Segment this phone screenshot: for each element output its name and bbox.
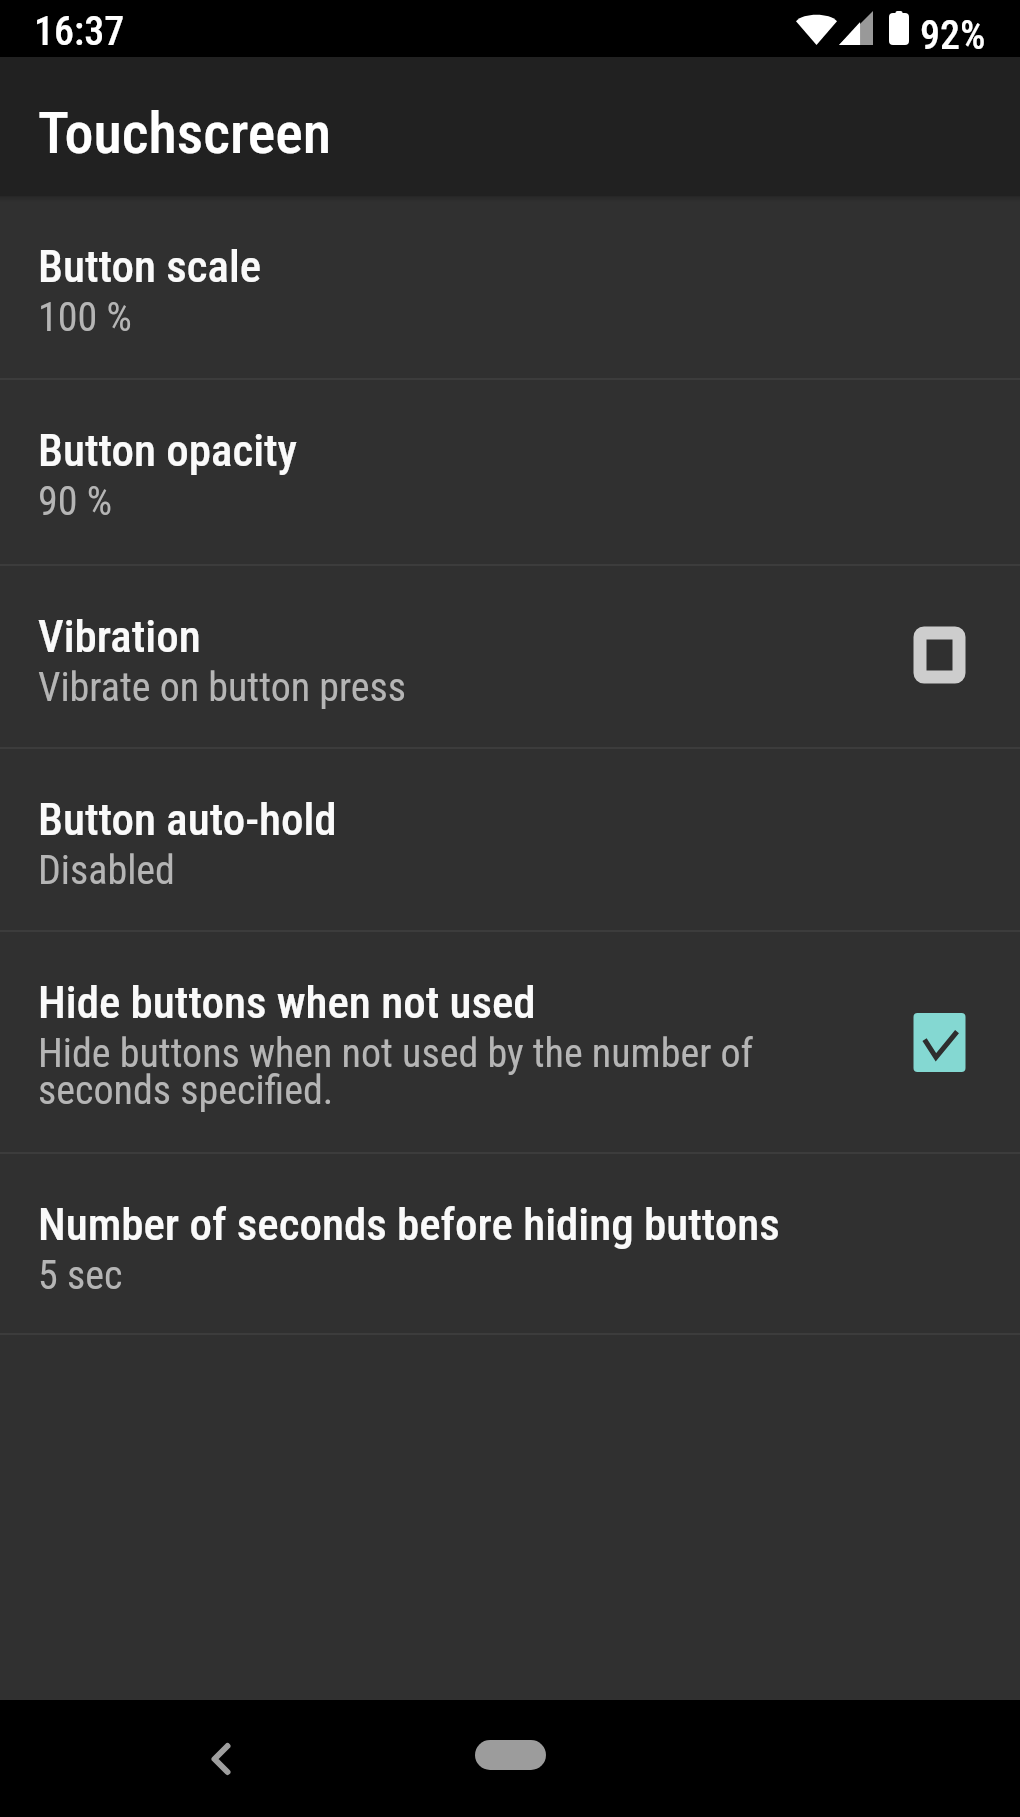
button[interactable]: Back bbox=[179, 1717, 263, 1801]
button[interactable]: Button scale bbox=[0, 196, 1020, 378]
staticText: 5 sec bbox=[38, 1252, 123, 1299]
button[interactable]: Button opacity bbox=[0, 380, 1020, 564]
button[interactable]: Button auto-hold bbox=[0, 749, 1020, 930]
staticText: Disabled bbox=[38, 847, 175, 894]
button[interactable]: Number of seconds before hiding buttons bbox=[0, 1154, 1020, 1333]
staticText: 16:37 bbox=[34, 8, 125, 55]
staticText: 92% bbox=[920, 12, 986, 57]
staticText: Vibration bbox=[38, 610, 201, 663]
button[interactable]: Disabled, toggle setting bbox=[896, 613, 984, 701]
staticText: Number of seconds before hiding buttons bbox=[38, 1198, 780, 1251]
staticText: Touchscreen bbox=[38, 99, 332, 167]
staticText: 90 % bbox=[38, 478, 112, 525]
button[interactable]: Hide buttons when not used bbox=[0, 932, 1020, 1152]
staticText: 100 % bbox=[38, 294, 132, 341]
staticText: Hide buttons when not used bbox=[38, 976, 536, 1029]
staticText: Button scale bbox=[38, 240, 262, 293]
button[interactable]: Vibration bbox=[0, 566, 1020, 747]
staticText: Button opacity bbox=[38, 424, 298, 477]
staticText: Hide buttons when not used by the number… bbox=[38, 1030, 798, 1114]
staticText: Vibrate on button press bbox=[38, 664, 407, 711]
button[interactable]: Home bbox=[475, 1740, 546, 1770]
staticText: Button auto-hold bbox=[38, 793, 337, 846]
button[interactable]: Enabled, toggle setting bbox=[896, 998, 984, 1086]
